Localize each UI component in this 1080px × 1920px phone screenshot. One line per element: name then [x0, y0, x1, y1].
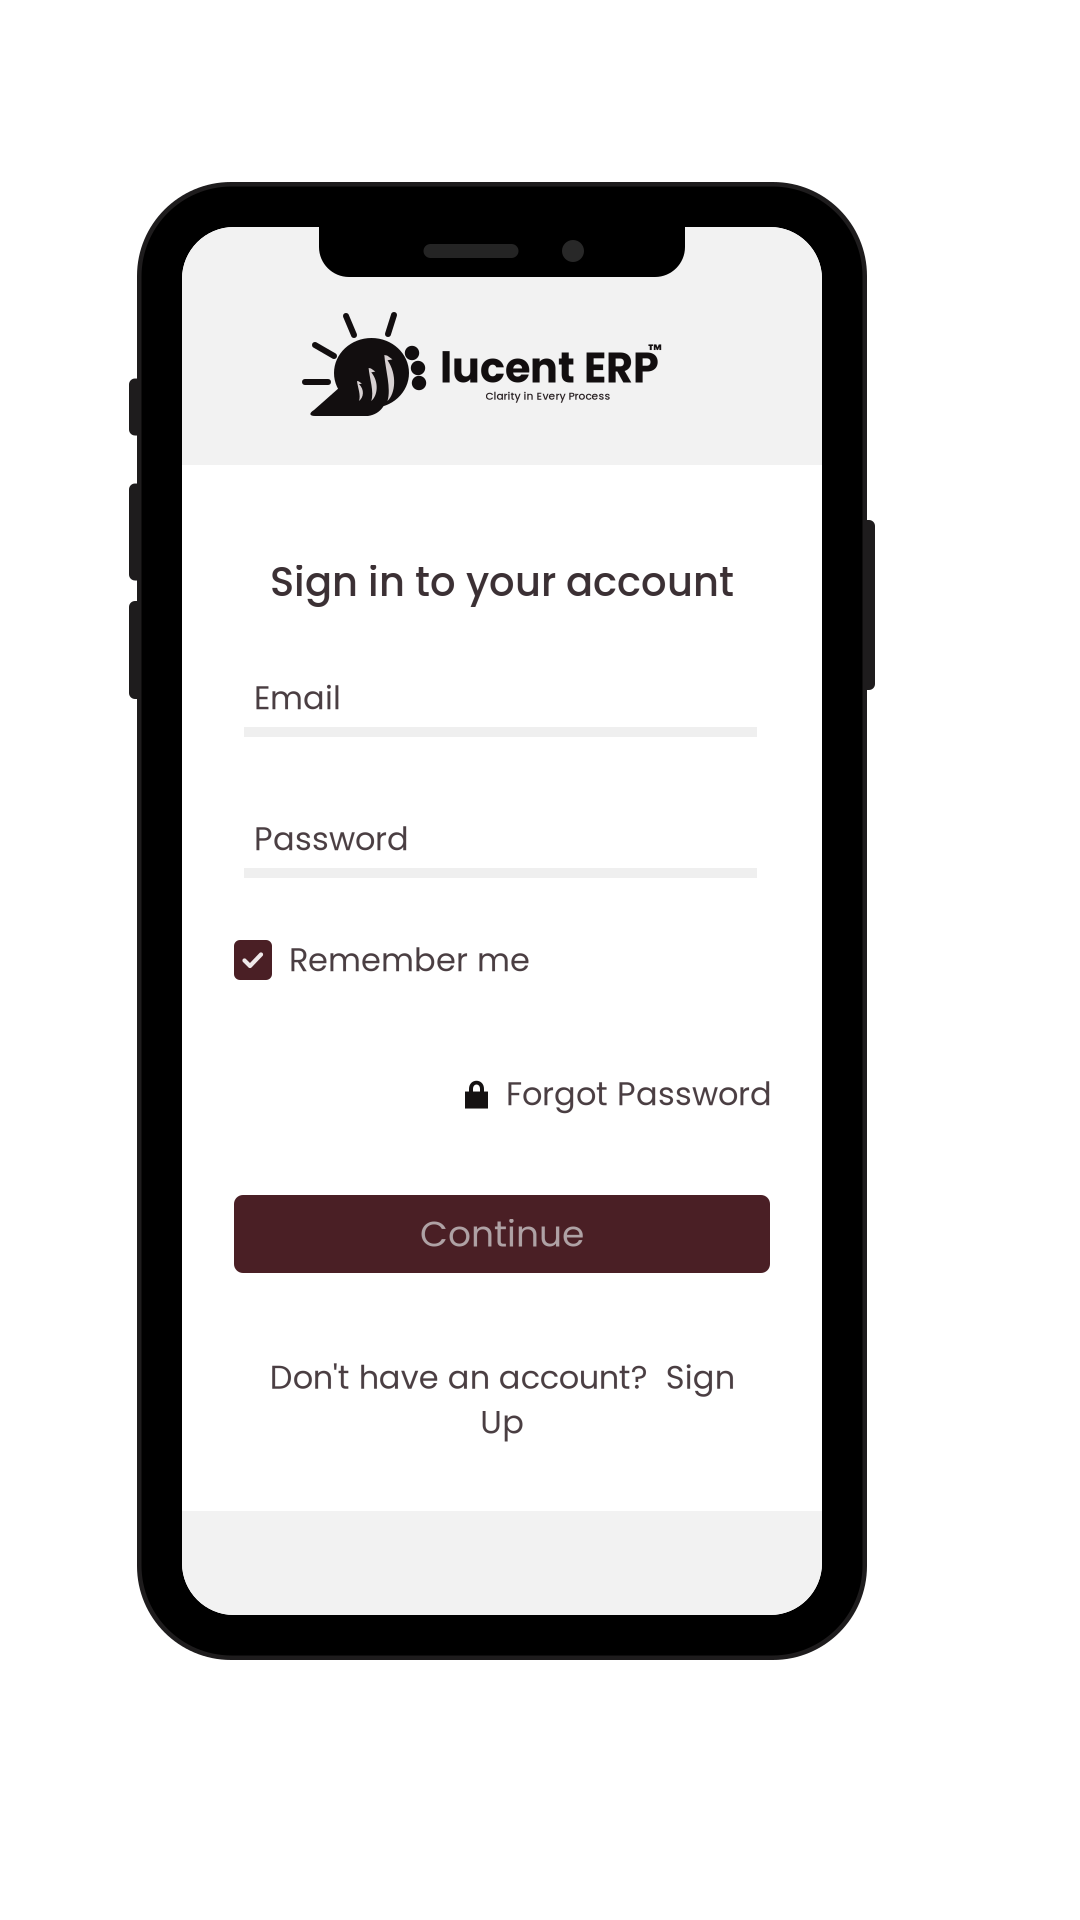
- staticText: Don't have an account? Sign Up: [269, 1355, 734, 1445]
- staticText: Email: [254, 676, 341, 720]
- staticText: ™: [648, 339, 662, 361]
- staticText: Password: [254, 817, 409, 861]
- button[interactable]: Forgot Password: [465, 1072, 772, 1116]
- staticText: Forgot Password: [506, 1072, 772, 1116]
- staticText: Clarity in Every Process: [485, 388, 610, 403]
- staticText: Remember me: [289, 938, 530, 982]
- staticText: Continue: [420, 1209, 584, 1259]
- staticText: lucent ERP: [440, 339, 659, 397]
- button[interactable]: Remember me: [234, 938, 770, 982]
- staticText: Sign in to your account: [270, 554, 734, 610]
- button[interactable]: Continue: [234, 1195, 770, 1273]
- button[interactable]: Don't have an account? Sign Up: [266, 1352, 738, 1448]
